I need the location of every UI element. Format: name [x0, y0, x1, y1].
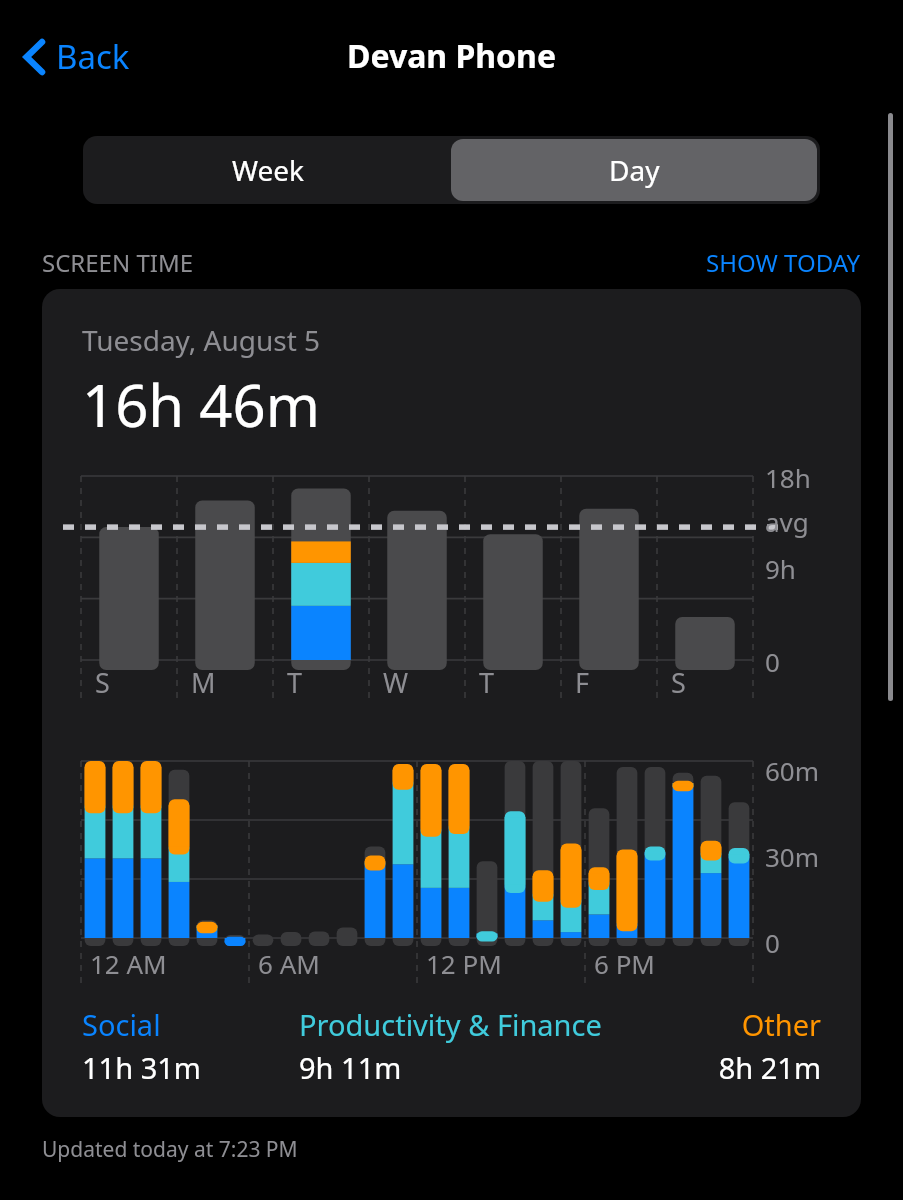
staticText: 0 — [765, 644, 780, 679]
staticText: Week — [232, 151, 305, 189]
staticText: Devan Phone — [347, 34, 557, 78]
staticText: 6 PM — [594, 946, 655, 981]
staticText: T — [287, 664, 303, 701]
staticText: 30m — [765, 839, 820, 874]
staticText: F — [575, 664, 590, 701]
staticText: S — [671, 664, 686, 701]
staticText: avg — [765, 504, 809, 539]
staticText: 9h — [765, 551, 796, 586]
staticText: SHOW TODAY — [706, 246, 861, 279]
button[interactable]: Social — [82, 1005, 299, 1087]
staticText: Back — [56, 34, 130, 79]
staticText: 12 AM — [90, 946, 167, 981]
staticText: Social — [82, 1005, 299, 1044]
staticText: Productivity & Finance — [299, 1005, 636, 1044]
staticText: 6 AM — [258, 946, 320, 981]
button[interactable]: Other — [636, 1005, 821, 1087]
staticText: W — [383, 664, 409, 701]
button[interactable]: Day — [451, 139, 817, 201]
staticText: 16h 46m — [82, 365, 320, 444]
button[interactable]: Back — [18, 26, 136, 87]
staticText: 12 PM — [426, 946, 502, 981]
staticText: 9h 11m — [299, 1048, 636, 1087]
staticText: Day — [609, 151, 660, 189]
staticText: M — [191, 664, 216, 701]
staticText: Other — [636, 1005, 821, 1044]
button[interactable]: SHOW TODAY — [706, 246, 861, 279]
staticText: 60m — [765, 753, 820, 788]
staticText: Tuesday, August 5 — [82, 321, 321, 359]
staticText: S — [95, 664, 110, 701]
staticText: SCREEN TIME — [42, 246, 194, 279]
staticText: 18h — [765, 460, 811, 495]
staticText: 11h 31m — [82, 1048, 299, 1087]
staticText: 8h 21m — [636, 1048, 821, 1087]
button[interactable]: Week — [86, 139, 451, 201]
staticText: 0 — [765, 925, 780, 960]
staticText: Updated today at 7:23 PM — [42, 1135, 298, 1164]
staticText: T — [479, 664, 495, 701]
button[interactable]: Productivity & Finance — [299, 1005, 636, 1087]
